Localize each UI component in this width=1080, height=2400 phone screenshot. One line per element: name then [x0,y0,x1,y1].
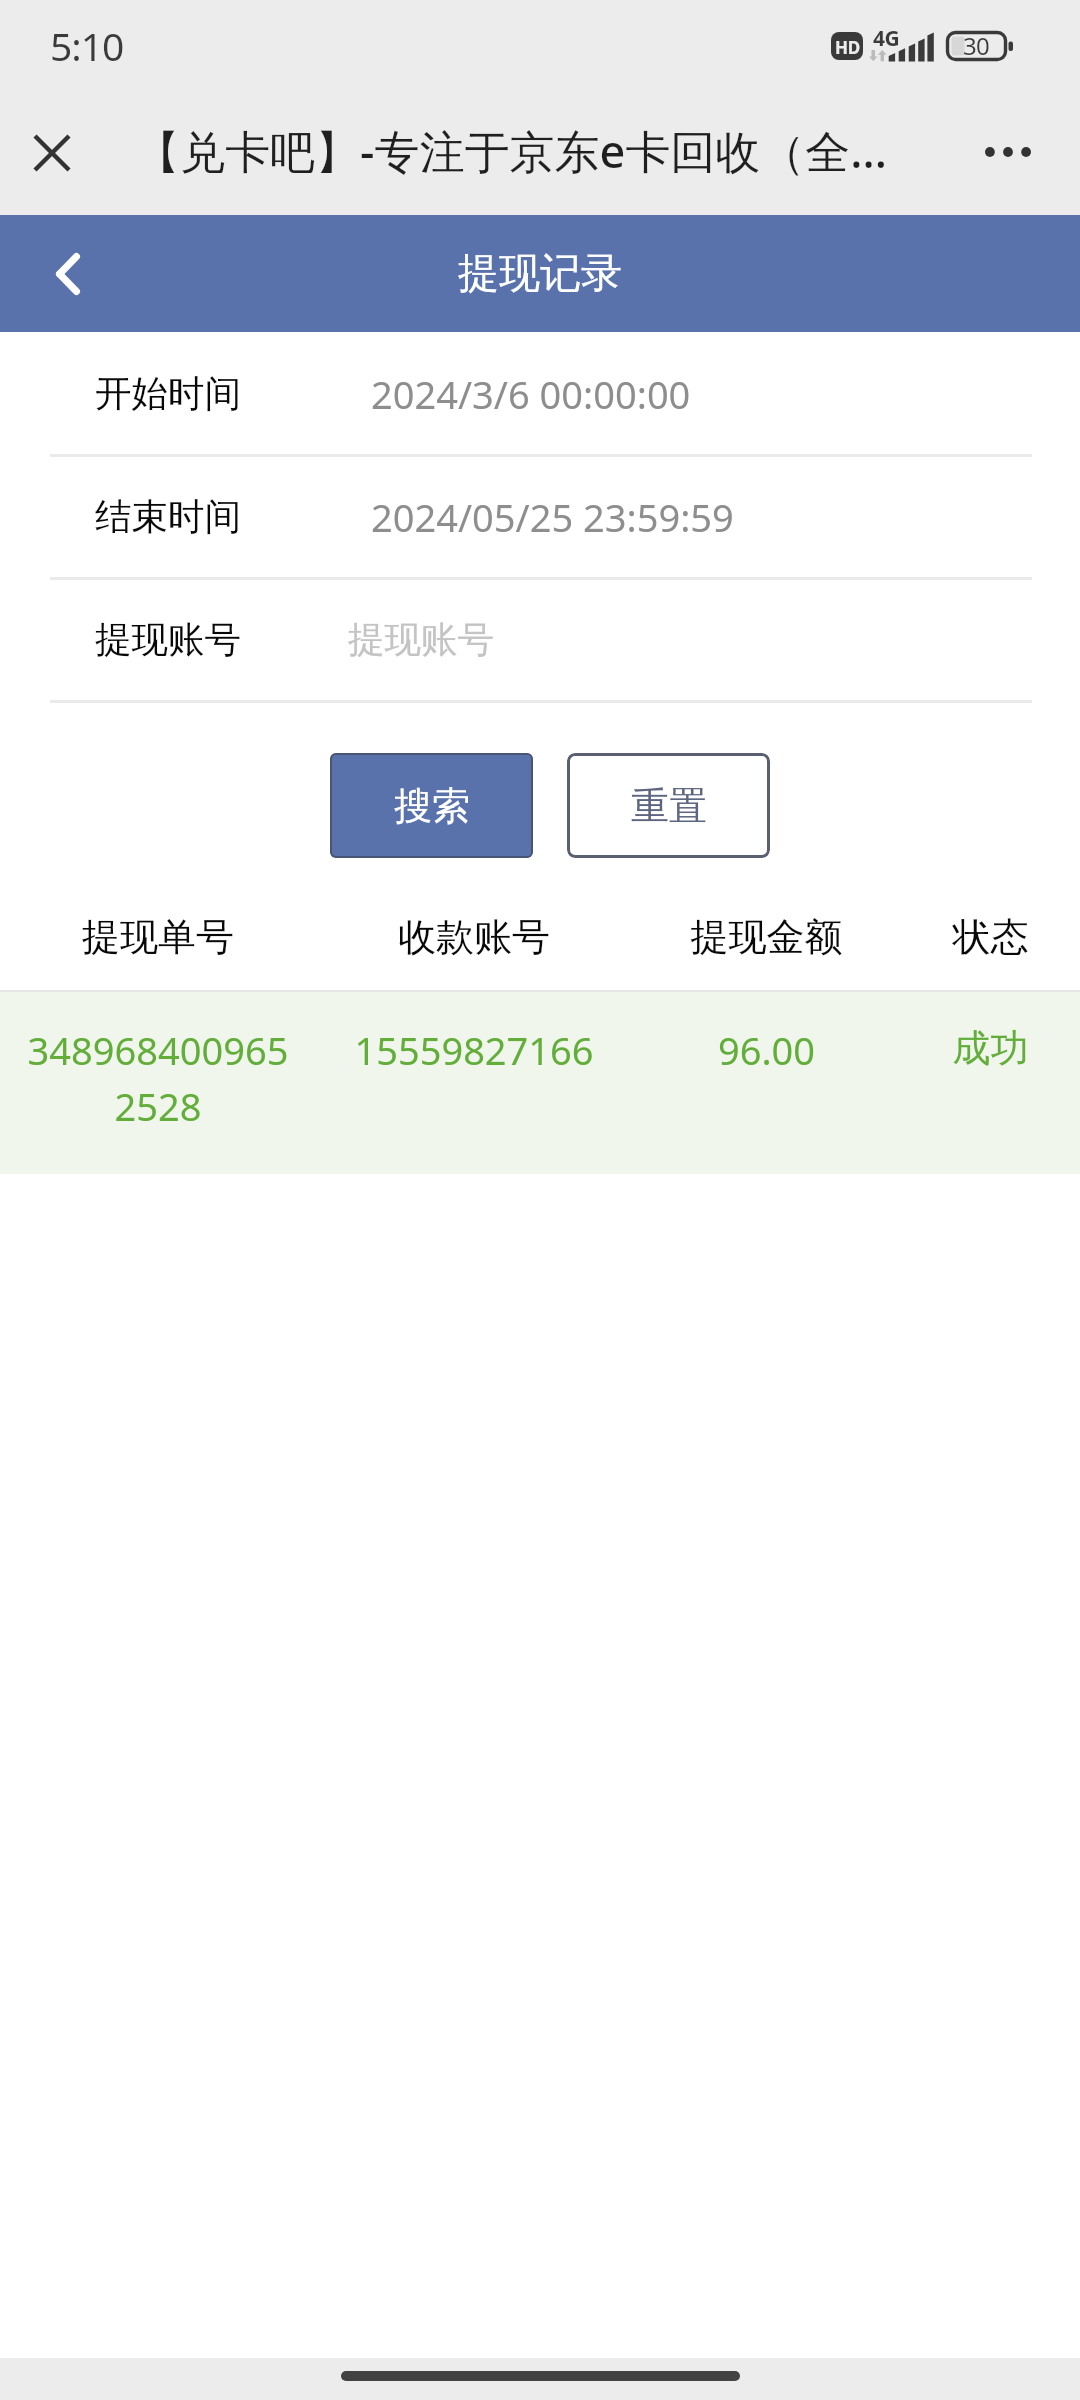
button[interactable]: 3489684009652528 [0,992,1080,1174]
staticText: 搜索 [394,782,470,830]
button[interactable]: 2024/05/25 23:59:59 [371,491,734,543]
button[interactable]: Back [0,215,135,332]
staticText: 【兑卡吧】-专注于京东e卡回收（全... [135,120,887,181]
staticText: 提现单号 [0,913,316,961]
staticText: 状态 [901,913,1080,961]
staticText: 收款账号 [316,913,632,961]
staticText: 成功 [901,1024,1080,1072]
staticText: 结束时间 [95,494,241,540]
button[interactable]: 提现账号 [348,617,494,663]
staticText: 提现账号 [95,617,241,663]
staticText: 提现记录 [458,248,622,300]
staticText: 96.00 [632,1024,901,1076]
staticText: 提现金额 [632,913,901,961]
staticText: 5:10 [50,19,124,72]
button[interactable]: 搜索 [330,753,533,858]
staticText: 3489684009652528 [23,1024,293,1132]
button[interactable]: 重置 [567,753,770,858]
staticText: 15559827166 [316,1024,632,1076]
button[interactable]: More options [958,97,1058,207]
staticText: 重置 [631,782,707,830]
staticText: 开始时间 [95,371,241,417]
staticText: 30 [963,29,989,62]
button[interactable]: 2024/3/6 00:00:00 [371,368,691,420]
staticText: HD [835,36,860,59]
button[interactable]: Close [7,98,97,208]
staticText: 4G [873,24,900,53]
